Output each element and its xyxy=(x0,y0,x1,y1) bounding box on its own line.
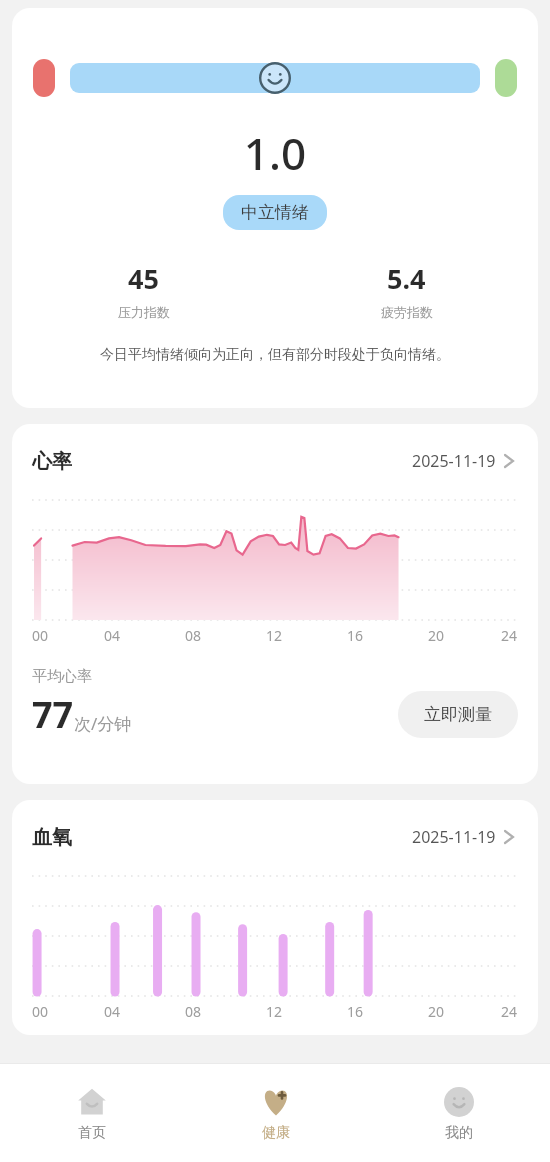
staticText: 77 xyxy=(32,690,74,739)
staticText: 16 xyxy=(347,626,364,645)
staticText: 08 xyxy=(185,626,202,645)
staticText: 今日平均情绪倾向为正向，但有部分时段处于负向情绪。 xyxy=(26,346,524,364)
staticText: 24 xyxy=(501,1002,518,1021)
staticText: 20 xyxy=(428,626,445,645)
button[interactable]: 2025-11-19 xyxy=(408,822,518,852)
staticText: 2025-11-19 xyxy=(412,826,496,848)
button[interactable]: 立即测量 xyxy=(398,691,518,738)
staticText: 疲劳指数 xyxy=(381,304,433,320)
staticText: 中立情绪 xyxy=(241,202,309,223)
staticText: 00 xyxy=(32,1002,49,1021)
staticText: 心率 xyxy=(32,449,72,474)
staticText: 血氧 xyxy=(32,825,72,850)
button[interactable]: 我的 xyxy=(367,1064,550,1162)
staticText: 08 xyxy=(185,1002,202,1021)
staticText: 平均心率 xyxy=(32,667,92,686)
button[interactable]: 2025-11-19 xyxy=(408,446,518,476)
staticText: 我的 xyxy=(445,1124,473,1142)
button[interactable]: 健康 xyxy=(184,1064,367,1162)
button[interactable]: 首页 xyxy=(0,1064,184,1162)
staticText: 20 xyxy=(428,1002,445,1021)
staticText: 5.4 xyxy=(387,260,426,297)
staticText: 健康 xyxy=(262,1124,290,1142)
staticText: 00 xyxy=(32,626,49,645)
staticText: 压力指数 xyxy=(118,304,170,320)
staticText: 45 xyxy=(128,260,159,297)
staticText: 16 xyxy=(347,1002,364,1021)
button[interactable]: 中立情绪 xyxy=(223,195,327,230)
staticText: 04 xyxy=(104,626,121,645)
staticText: 04 xyxy=(104,1002,121,1021)
staticText: 立即测量 xyxy=(424,704,492,725)
staticText: 次/分钟 xyxy=(74,712,132,735)
staticText: 24 xyxy=(501,626,518,645)
staticText: 首页 xyxy=(78,1124,106,1142)
staticText: 1.0 xyxy=(12,123,538,183)
staticText: 12 xyxy=(266,626,283,645)
staticText: 12 xyxy=(266,1002,283,1021)
staticText: 2025-11-19 xyxy=(412,450,496,472)
